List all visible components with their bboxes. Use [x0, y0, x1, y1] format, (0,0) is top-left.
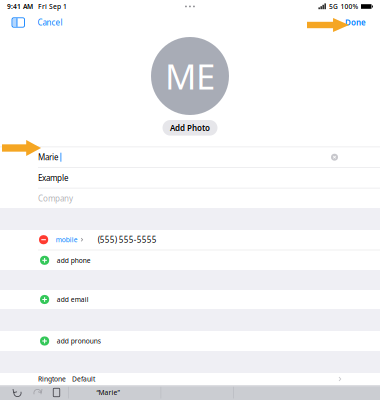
staticText: Default — [72, 375, 95, 383]
button[interactable]: add email — [0, 289, 380, 309]
button[interactable]: Ringtone — [0, 373, 380, 385]
staticText: Fri Sep 1 — [38, 2, 67, 11]
staticText: Add Photo — [170, 122, 210, 133]
staticText: (555) 555-5555 — [98, 234, 157, 245]
staticText: Ringtone — [38, 375, 66, 383]
button[interactable]: Show sidebar — [4, 14, 32, 31]
staticText: 9:41 AM — [7, 2, 33, 11]
staticText: mobile — [56, 235, 78, 244]
staticText: 100% — [340, 2, 358, 11]
button[interactable]: Undo — [12, 387, 23, 398]
button[interactable]: add pronouns — [0, 331, 380, 351]
staticText: 5G — [329, 2, 338, 11]
button[interactable]: add phone — [0, 250, 380, 270]
staticText: Marie — [38, 152, 59, 162]
button[interactable]: Paste — [52, 387, 61, 397]
button[interactable]: Multitasking options — [181, 1, 199, 11]
button[interactable]: Add Photo — [162, 120, 217, 136]
staticText: “Marie” — [97, 388, 120, 397]
button[interactable]: Done — [335, 13, 376, 32]
staticText: Example — [38, 172, 69, 183]
button[interactable]: mobile — [56, 235, 84, 244]
button[interactable]: Cancel — [32, 13, 67, 32]
staticText: add phone — [57, 256, 91, 265]
staticText: Cancel — [37, 17, 62, 28]
staticText: add pronouns — [57, 337, 101, 345]
staticText: ME — [165, 53, 215, 99]
button[interactable]: Redo — [32, 387, 43, 398]
staticText: Done — [345, 17, 366, 28]
staticText: add email — [57, 295, 89, 304]
button[interactable]: Remove phone number — [39, 235, 48, 244]
staticText: Company — [38, 193, 73, 204]
